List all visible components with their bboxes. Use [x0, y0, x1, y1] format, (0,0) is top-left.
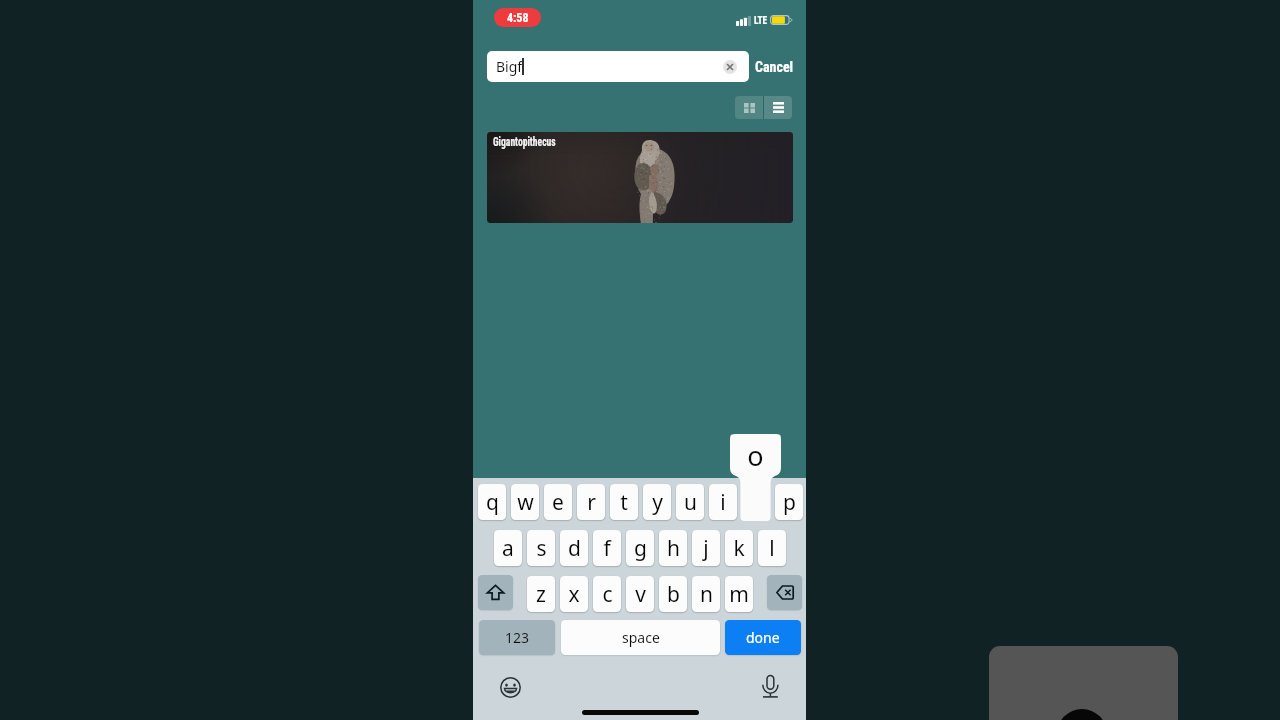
- button[interactable]: q: [478, 484, 506, 520]
- staticText: x: [568, 580, 580, 609]
- button[interactable]: 123: [479, 620, 555, 655]
- staticText: Bigf: [496, 57, 523, 76]
- staticText: f: [603, 534, 611, 563]
- button[interactable]: n: [692, 576, 720, 612]
- staticText: a: [502, 534, 514, 563]
- button[interactable]: w: [511, 484, 539, 520]
- button[interactable]: Emoji keyboard: [497, 674, 524, 701]
- button[interactable]: Bigf: [487, 51, 749, 82]
- staticText: g: [634, 534, 647, 563]
- button[interactable]: j: [692, 530, 720, 566]
- staticText: t: [620, 488, 628, 517]
- staticText: Cancel: [755, 59, 794, 75]
- staticText: m: [729, 580, 749, 609]
- button[interactable]: b: [659, 576, 687, 612]
- staticText: 123: [505, 628, 530, 647]
- button[interactable]: Cancel: [753, 54, 796, 79]
- button[interactable]: done: [725, 620, 801, 655]
- button[interactable]: i: [709, 484, 737, 520]
- button[interactable]: y: [643, 484, 671, 520]
- staticText: n: [700, 580, 713, 609]
- button[interactable]: Grid view: [735, 96, 763, 119]
- button[interactable]: Gigantopithecus: [487, 132, 793, 223]
- button[interactable]: v: [626, 576, 654, 612]
- button[interactable]: Backspace: [767, 575, 802, 610]
- button[interactable]: p: [775, 484, 803, 520]
- button[interactable]: Shift: [478, 575, 513, 610]
- button[interactable]: h: [659, 530, 687, 566]
- staticText: p: [783, 488, 796, 517]
- button[interactable]: o: [730, 434, 781, 521]
- staticText: h: [667, 534, 680, 563]
- button[interactable]: s: [527, 530, 555, 566]
- staticText: o: [730, 437, 781, 474]
- button[interactable]: space: [561, 620, 720, 655]
- button[interactable]: x: [560, 576, 588, 612]
- button[interactable]: t: [610, 484, 638, 520]
- button[interactable]: f: [593, 530, 621, 566]
- staticText: done: [746, 628, 780, 647]
- staticText: w: [517, 488, 534, 517]
- button[interactable]: e: [544, 484, 572, 520]
- button[interactable]: m: [725, 576, 753, 612]
- button[interactable]: d: [560, 530, 588, 566]
- button[interactable]: Clear search text: [723, 60, 737, 74]
- button[interactable]: g: [626, 530, 654, 566]
- staticText: Gigantopithecus: [493, 135, 556, 149]
- staticText: c: [602, 580, 613, 609]
- button[interactable]: r: [577, 484, 605, 520]
- staticText: u: [684, 488, 697, 517]
- staticText: l: [769, 534, 775, 563]
- button[interactable]: l: [758, 530, 786, 566]
- staticText: r: [587, 488, 596, 517]
- staticText: j: [703, 534, 709, 563]
- staticText: space: [622, 628, 660, 647]
- staticText: b: [667, 580, 680, 609]
- button[interactable]: k: [725, 530, 753, 566]
- button[interactable]: Dictation: [761, 673, 781, 699]
- staticText: q: [486, 488, 499, 517]
- staticText: s: [536, 534, 547, 563]
- staticText: v: [635, 580, 646, 609]
- staticText: z: [536, 580, 546, 609]
- button[interactable]: List view: [764, 96, 792, 119]
- button[interactable]: u: [676, 484, 704, 520]
- staticText: e: [552, 488, 564, 517]
- staticText: k: [733, 534, 745, 563]
- staticText: i: [720, 488, 726, 517]
- staticText: 4:58: [507, 11, 529, 25]
- staticText: LTE: [754, 14, 768, 26]
- button[interactable]: c: [593, 576, 621, 612]
- staticText: d: [568, 534, 581, 563]
- button[interactable]: a: [494, 530, 522, 566]
- button[interactable]: z: [527, 576, 555, 612]
- staticText: y: [652, 488, 663, 517]
